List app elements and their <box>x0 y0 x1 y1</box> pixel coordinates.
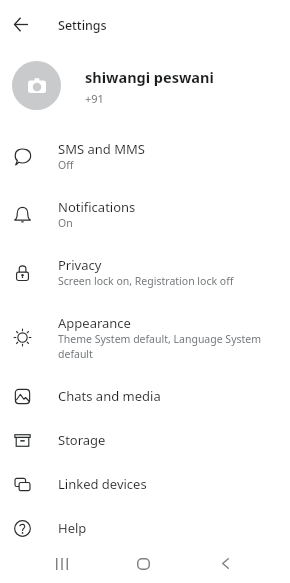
button[interactable]: shiwangi peswani <box>0 50 290 115</box>
staticText: Privacy <box>58 256 102 274</box>
staticText: Storage <box>58 431 106 449</box>
button[interactable]: SMS and MMS <box>0 127 290 185</box>
staticText: Help <box>58 519 87 537</box>
button[interactable]: Linked devices <box>0 462 290 506</box>
button[interactable]: Privacy <box>0 243 290 301</box>
staticText: +91 <box>85 91 104 106</box>
staticText: Settings <box>58 17 107 34</box>
staticText: Linked devices <box>58 475 147 493</box>
button[interactable]: Notifications <box>0 185 290 243</box>
button[interactable]: Navigate up <box>0 0 42 50</box>
staticText: Screen lock on, Registration lock off <box>58 274 234 288</box>
staticText: Notifications <box>58 198 136 216</box>
staticText: Chats and media <box>58 387 161 405</box>
button[interactable]: Help <box>0 506 290 550</box>
staticText: shiwangi peswani <box>85 67 214 87</box>
staticText: SMS and MMS <box>58 140 145 158</box>
staticText: Theme System default, Language System de… <box>58 332 273 361</box>
button[interactable]: Storage <box>0 418 290 462</box>
button[interactable]: Appearance <box>0 301 290 374</box>
staticText: Appearance <box>58 314 131 332</box>
button[interactable]: Home <box>116 550 171 577</box>
button[interactable]: Recent apps <box>34 550 89 577</box>
staticText: On <box>58 216 73 230</box>
button[interactable]: Chats and media <box>0 374 290 418</box>
staticText: Off <box>58 158 74 172</box>
button[interactable]: Back <box>198 550 253 577</box>
